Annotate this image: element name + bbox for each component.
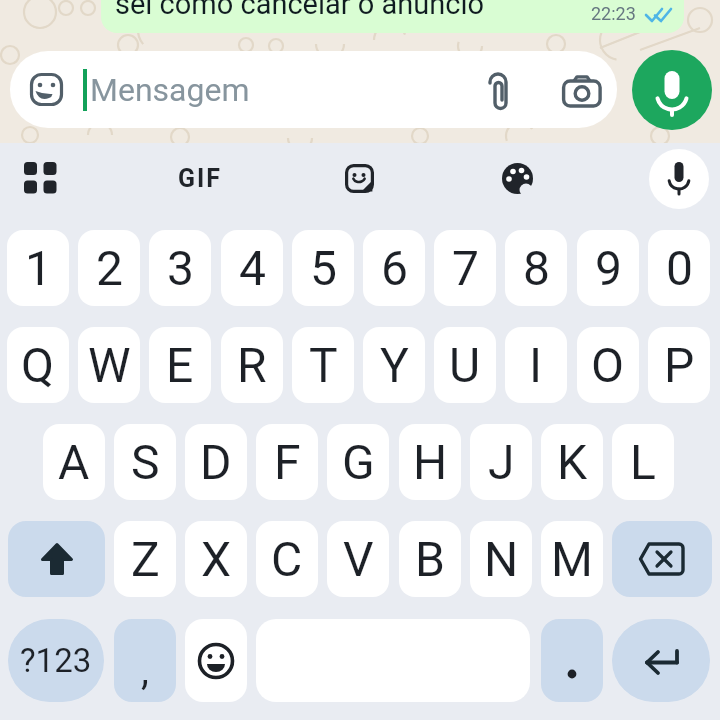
staticText: Y [380,337,409,393]
button[interactable]: W [78,327,140,403]
button[interactable]: Q [7,327,69,403]
staticText: O [591,337,625,393]
button[interactable] [649,149,709,209]
staticText: S [131,434,160,490]
staticText: 22:23 [591,3,636,24]
button[interactable]: G [327,424,389,500]
staticText: R [237,337,267,393]
button[interactable] [10,51,617,128]
staticText: 4 [239,240,266,296]
button[interactable]: 7 [434,230,496,306]
button[interactable] [185,619,247,702]
button[interactable]: H [399,424,461,500]
staticText: V [343,531,374,587]
staticText: 0 [666,240,693,296]
staticText: 9 [595,240,622,296]
staticText: X [201,531,232,587]
button[interactable]: 5 [292,230,354,306]
button[interactable] [632,50,712,130]
staticText: U [449,337,481,393]
staticText: 6 [381,240,408,296]
button[interactable]: P [648,327,710,403]
staticText: L [630,434,656,490]
button[interactable] [12,150,68,206]
button[interactable]: C [256,521,318,597]
staticText: GIF [178,164,223,193]
button[interactable]: 1 [7,230,69,306]
button[interactable] [331,150,387,206]
staticText: ?123 [20,641,92,680]
button[interactable]: GIF [168,150,232,206]
button[interactable]: O [577,327,639,403]
button[interactable]: L [612,424,674,500]
staticText: H [413,434,448,490]
button[interactable]: U [434,327,496,403]
staticText: T [309,337,338,393]
button[interactable] [489,150,545,206]
staticText: 1 [25,240,52,296]
button[interactable]: 2 [78,230,140,306]
button[interactable] [541,619,603,702]
button[interactable]: 4 [221,230,283,306]
staticText: 3 [167,240,194,296]
button[interactable]: S [114,424,176,500]
button[interactable]: Z [114,521,176,597]
staticText: 2 [96,240,123,296]
staticText: Mensagem [90,71,250,109]
button[interactable]: E [149,327,211,403]
button[interactable]: , [114,619,176,702]
button[interactable] [8,521,105,597]
button[interactable]: R [221,327,283,403]
staticText: M [551,531,593,587]
staticText: K [557,434,588,490]
button[interactable]: M [541,521,603,597]
button[interactable]: 3 [149,230,211,306]
button[interactable]: D [185,424,247,500]
staticText: B [415,531,445,587]
staticText: J [488,434,515,490]
button[interactable] [612,619,710,702]
button[interactable]: 6 [363,230,425,306]
button[interactable]: X [185,521,247,597]
button[interactable]: K [541,424,603,500]
staticText: D [200,434,232,490]
staticText: sei como cancelar o anúncio [115,0,485,21]
button[interactable]: 8 [505,230,567,306]
button[interactable]: N [470,521,532,597]
staticText: 7 [452,240,479,296]
button[interactable]: B [399,521,461,597]
button[interactable]: 0 [648,230,710,306]
staticText: W [88,337,131,393]
staticText: G [342,434,375,490]
staticText: Q [21,337,55,393]
staticText: A [58,434,90,490]
button[interactable] [612,521,712,597]
staticText: C [271,531,303,587]
staticText: Z [131,531,160,587]
staticText: 8 [523,240,550,296]
button[interactable]: V [327,521,389,597]
staticText: E [166,337,194,393]
staticText: F [274,434,301,490]
button[interactable]: F [256,424,318,500]
button[interactable]: T [292,327,354,403]
staticText: N [484,531,519,587]
button[interactable]: Y [363,327,425,403]
staticText: , [141,647,149,694]
staticText: P [664,337,695,393]
staticText: 5 [310,240,337,296]
button[interactable]: ?123 [8,619,104,702]
staticText: I [529,337,543,393]
button[interactable]: I [505,327,567,403]
button[interactable]: J [470,424,532,500]
button[interactable]: 9 [577,230,639,306]
button[interactable]: A [43,424,105,500]
